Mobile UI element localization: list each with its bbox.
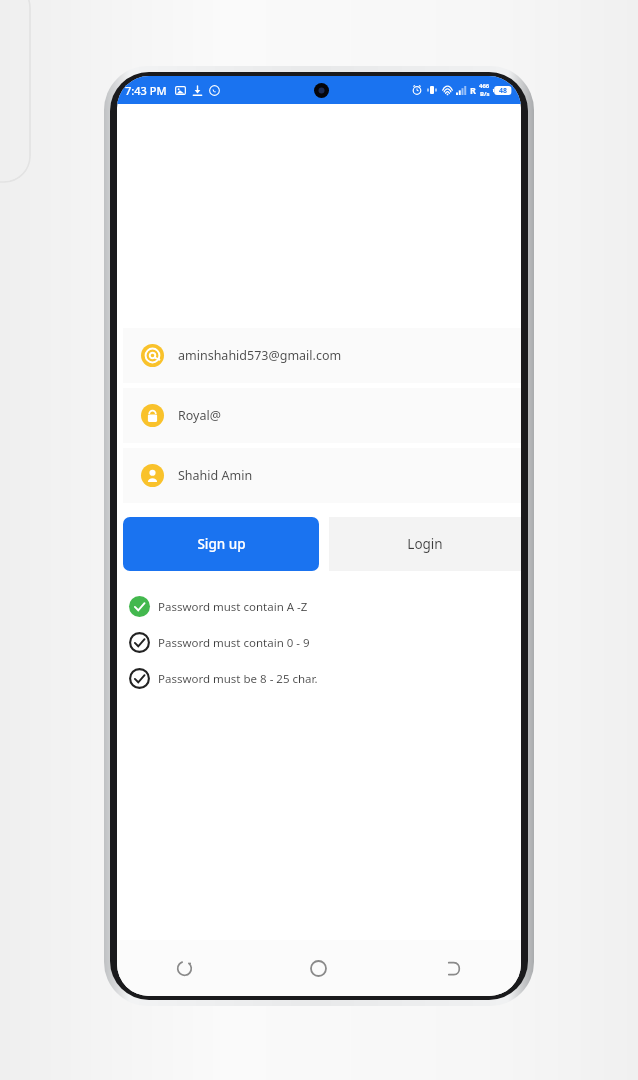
button[interactable]: aminshahid573@gmail.com: [123, 328, 521, 383]
staticText: Password must contain 0 - 9: [158, 635, 310, 651]
staticText: 7:43 PM: [125, 83, 167, 98]
staticText: aminshahid573@gmail.com: [178, 347, 342, 364]
button[interactable]: Shahid Amin: [123, 448, 521, 503]
staticText: Password must contain A -Z: [158, 599, 308, 615]
staticText: 48: [499, 86, 508, 96]
staticText: Password must be 8 - 25 char.: [158, 671, 318, 687]
button[interactable]: Royal@: [123, 388, 521, 443]
staticText: B/s: [480, 90, 490, 98]
button[interactable]: Password must contain A -Z: [129, 596, 308, 617]
staticText: 466: [479, 82, 490, 90]
button[interactable]: Login: [329, 517, 521, 571]
staticText: Royal@: [178, 407, 221, 424]
staticText: R: [470, 84, 476, 96]
staticText: Login: [407, 535, 443, 553]
button[interactable]: Home: [251, 940, 386, 996]
staticText: Sign up: [197, 535, 246, 553]
button[interactable]: Recent apps: [117, 940, 251, 996]
button[interactable]: Sign up: [123, 517, 319, 571]
button[interactable]: Password must be 8 - 25 char.: [129, 668, 318, 689]
button[interactable]: Back: [386, 940, 521, 996]
button[interactable]: Password must contain 0 - 9: [129, 632, 310, 653]
staticText: Shahid Amin: [178, 467, 253, 484]
